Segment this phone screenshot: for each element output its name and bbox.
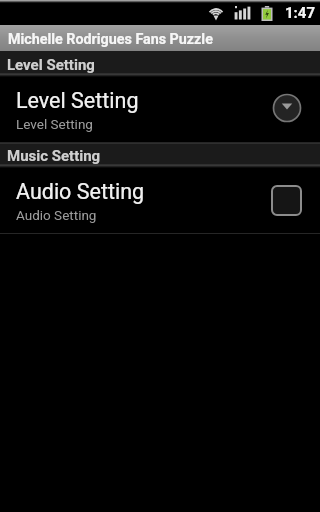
- staticText: Michelle Rodrigues Fans Puzzle: [8, 31, 213, 48]
- staticText: Music Setting: [7, 147, 101, 165]
- staticText: Level Setting: [16, 88, 139, 113]
- staticText: Audio Setting: [16, 179, 145, 204]
- staticText: Audio Setting: [16, 207, 97, 223]
- button[interactable]: Audio Setting checkbox: [271, 185, 302, 216]
- button[interactable]: Expand Level Setting: [272, 93, 302, 123]
- staticText: Level Setting: [7, 56, 95, 74]
- staticText: 1:47: [285, 4, 316, 22]
- button[interactable]: Audio Setting: [0, 168, 320, 233]
- staticText: Level Setting: [16, 116, 93, 132]
- button[interactable]: Level Setting: [0, 77, 320, 142]
